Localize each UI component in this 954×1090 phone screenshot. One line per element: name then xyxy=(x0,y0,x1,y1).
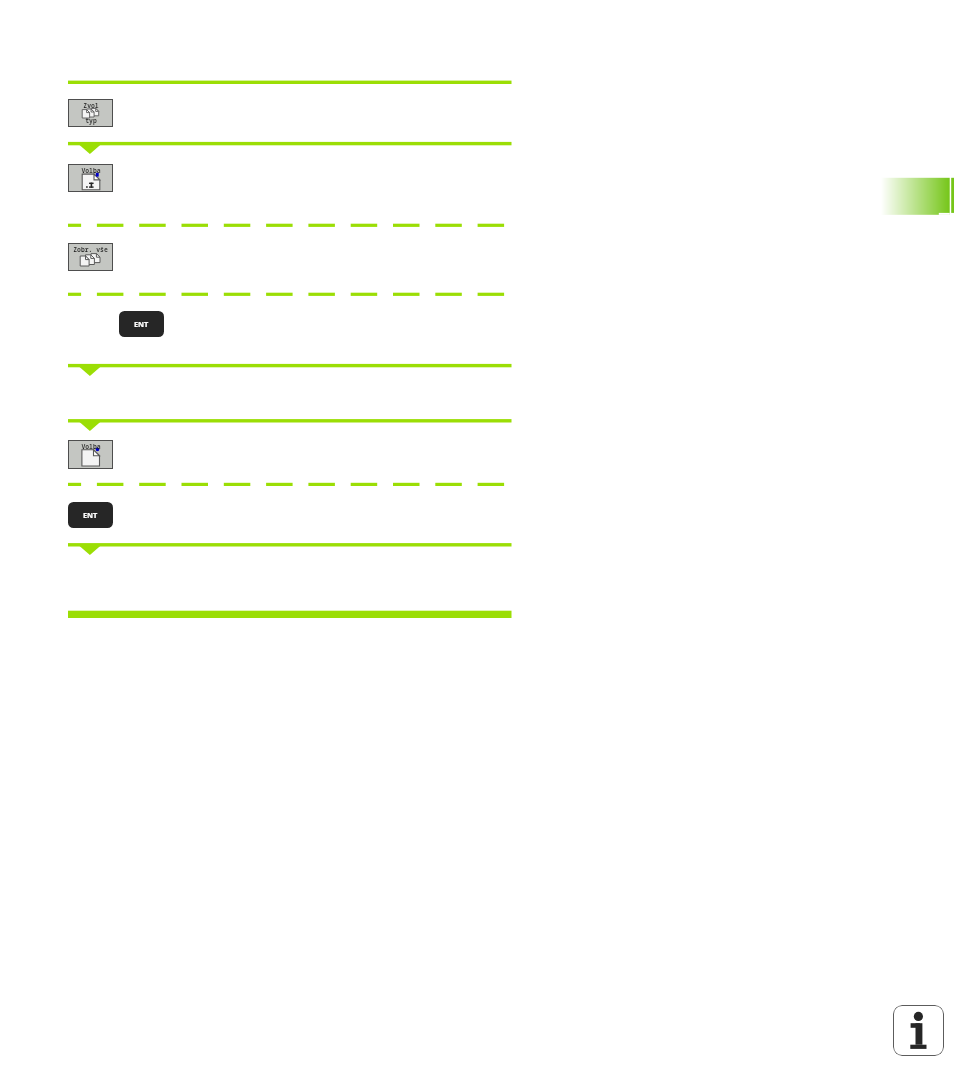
button[interactable]: Volba xyxy=(68,440,113,469)
button[interactable]: ENT xyxy=(68,502,113,528)
staticText: typ xyxy=(85,116,97,125)
button[interactable]: Zvol xyxy=(68,99,113,127)
staticText: Volba xyxy=(81,166,101,175)
staticText: ENT xyxy=(134,319,149,329)
button[interactable]: Volba xyxy=(68,164,113,192)
button[interactable]: Zobr. vše xyxy=(68,243,113,271)
staticText: Zvol xyxy=(83,101,99,110)
staticText: Zobr. vše xyxy=(73,245,108,254)
button[interactable]: Information xyxy=(893,1005,944,1056)
button[interactable]: ENT xyxy=(119,311,164,337)
staticText: ENT xyxy=(83,510,98,520)
staticText: Volba xyxy=(81,442,101,451)
